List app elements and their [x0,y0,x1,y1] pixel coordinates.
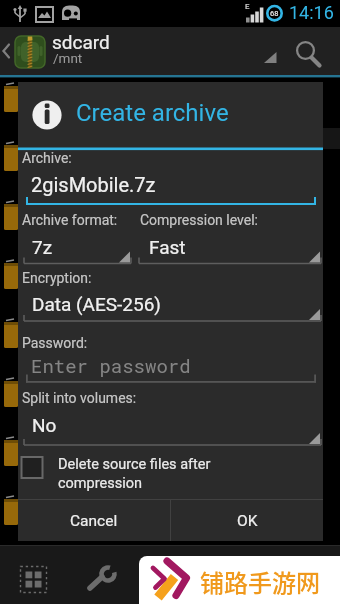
staticText: sdcard [52,31,110,53]
staticText: Archive format: [22,212,118,228]
button[interactable] [0,27,280,75]
button[interactable] [24,348,316,383]
staticText: No [32,414,57,436]
staticText: OK [237,512,258,530]
staticText: Split into volumes: [22,390,137,406]
staticText: 7z [32,236,53,258]
button[interactable] [22,454,282,480]
staticText: Encryption: [22,270,92,286]
button[interactable] [24,170,316,205]
staticText: Cancel [70,512,118,530]
staticText: 68 [270,9,279,18]
staticText: Delete source files after compression [58,456,211,491]
button[interactable] [139,234,321,264]
staticText: 2gisMobile.7z [31,173,156,196]
staticText: /mnt [53,50,83,66]
staticText: Compression level: [140,212,258,228]
staticText: Create archive [76,99,229,127]
staticText: 铺路手游网 [200,564,320,599]
staticText: 14:16 [289,2,334,23]
staticText: Data (AES-256) [32,293,161,315]
staticText: Fast [149,236,186,258]
button[interactable] [286,30,330,74]
button[interactable] [24,291,321,321]
button[interactable]: OK [171,500,323,541]
button[interactable] [24,415,321,445]
button[interactable]: Cancel [18,500,170,541]
staticText: Password: [22,335,88,351]
staticText: Archive: [22,150,72,166]
staticText: E [245,2,250,11]
staticText: Enter password [31,353,191,378]
button[interactable]: 铺路手游网 [139,556,340,604]
button[interactable] [24,234,131,264]
